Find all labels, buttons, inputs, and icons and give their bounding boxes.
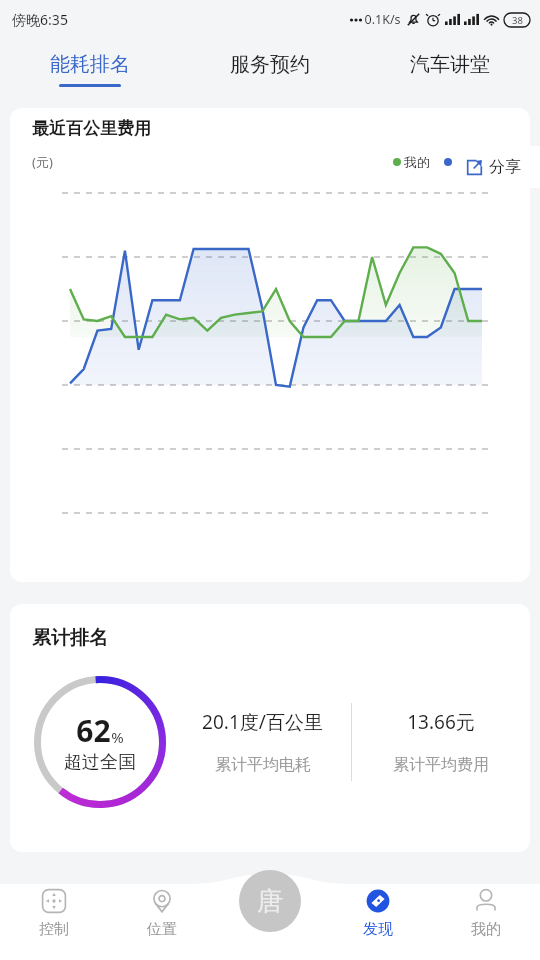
button[interactable]: 控制 (0, 886, 108, 939)
staticText: 超过全国 (64, 751, 136, 774)
staticText: 分享 (489, 157, 521, 177)
button[interactable]: 分享 (454, 146, 540, 188)
staticText: 位置 (147, 920, 177, 939)
staticText: 唐 (257, 885, 283, 918)
staticText: 我的 (404, 154, 430, 170)
staticText: 控制 (39, 920, 69, 939)
staticText: 服务预约 (230, 52, 310, 77)
staticText: 62 (76, 710, 111, 751)
staticText: 第 (455, 154, 468, 170)
button[interactable]: 服务预约 (180, 38, 360, 100)
staticText: 累计排名 (32, 626, 108, 650)
staticText: 13.66元 (407, 709, 475, 735)
staticText: 最近百公里费用 (32, 118, 151, 139)
staticText: 0.1K/s (364, 11, 401, 28)
staticText: 能耗排名 (50, 52, 130, 77)
staticText: 发现 (363, 920, 393, 939)
staticText: 我的 (471, 920, 501, 939)
button[interactable]: 我的 (432, 886, 540, 939)
button[interactable]: 能耗排名 (0, 38, 180, 100)
staticText: 累计平均电耗 (215, 755, 311, 775)
button[interactable]: 位置 (108, 886, 216, 939)
staticText: 累计平均费用 (393, 755, 489, 775)
button[interactable]: 发现 (324, 886, 432, 939)
staticText: 38 (512, 14, 523, 27)
button[interactable]: 唐 (239, 870, 301, 932)
staticText: 傍晚6:35 (12, 10, 68, 29)
button[interactable]: 汽车讲堂 (360, 38, 540, 100)
staticText: (元) (32, 153, 53, 171)
staticText: 汽车讲堂 (410, 52, 490, 77)
staticText: 20.1度/百公里 (202, 709, 323, 735)
staticText: % (111, 727, 124, 747)
